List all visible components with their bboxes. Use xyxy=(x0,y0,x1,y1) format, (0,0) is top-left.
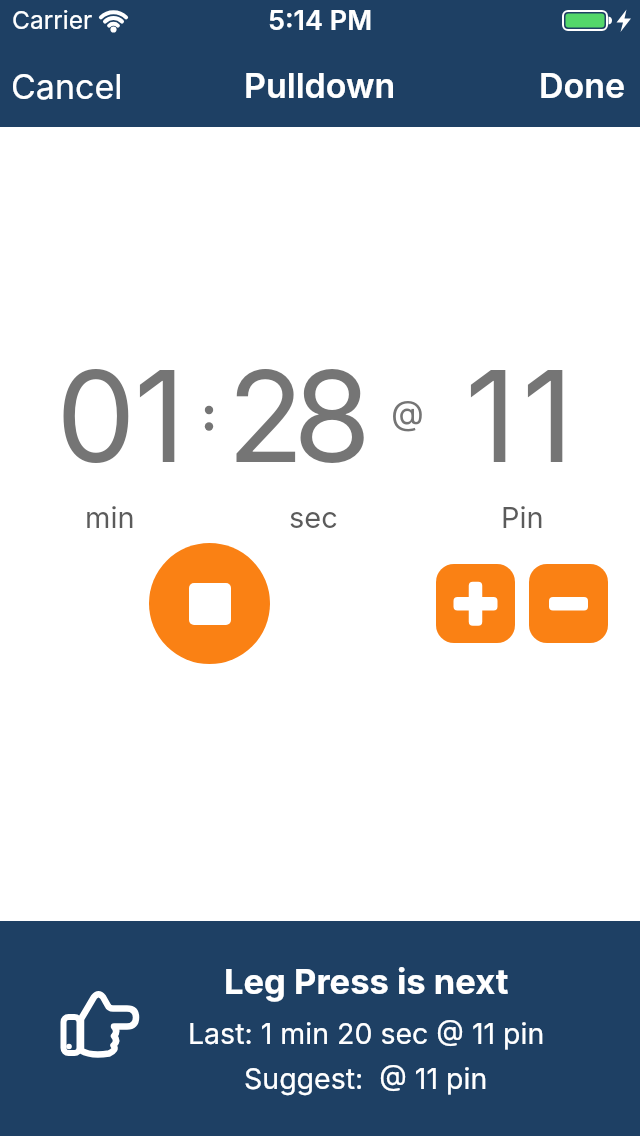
staticText: 1 xyxy=(465,339,517,492)
staticText: sec xyxy=(289,500,338,535)
staticText: 1 xyxy=(522,339,574,492)
staticText: Pin xyxy=(501,500,544,535)
staticText: 0 xyxy=(56,339,136,492)
staticText: Cancel xyxy=(11,66,123,107)
staticText: Pulldown xyxy=(244,65,396,106)
staticText: min xyxy=(85,500,135,535)
staticText: 1 xyxy=(134,339,186,492)
staticText: 8 xyxy=(293,339,372,492)
staticText: Done xyxy=(539,65,626,106)
staticText: Carrier xyxy=(12,5,93,35)
staticText: Suggest: @ 11 pin xyxy=(244,1061,488,1095)
staticText: 5:14 PM xyxy=(268,4,373,37)
staticText: Last: 1 min 20 sec @ 11 pin xyxy=(188,1016,545,1050)
staticText: @ xyxy=(391,392,424,433)
staticText: Leg Press is next xyxy=(224,961,509,1003)
staticText: 2 xyxy=(227,339,305,492)
